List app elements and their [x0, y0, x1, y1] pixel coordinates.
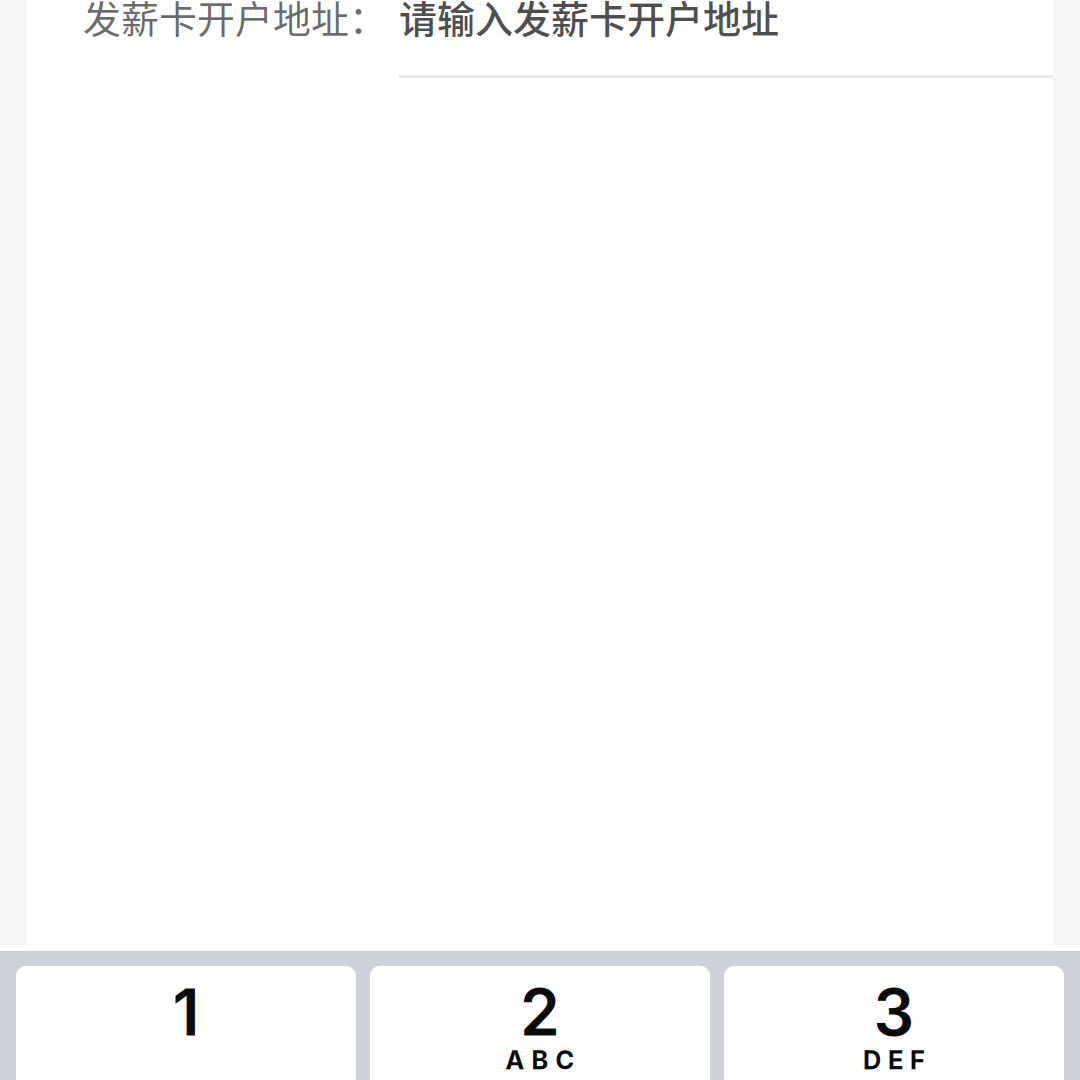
staticText: 发薪卡开户地址： — [83, 0, 387, 44]
staticText: 3 — [873, 974, 914, 1051]
staticText: DEF — [863, 1045, 925, 1075]
button[interactable]: 3 DEF — [724, 966, 1064, 1080]
staticText: 1 — [172, 974, 199, 1051]
button[interactable]: 2 ABC — [370, 966, 710, 1080]
button[interactable]: 1 — [16, 966, 356, 1080]
button[interactable]: 请输入发薪卡开户地址 — [399, 0, 1053, 78]
staticText: ABC — [505, 1045, 574, 1075]
staticText: 请输入发薪卡开户地址 — [399, 0, 779, 44]
staticText: 2 — [520, 974, 560, 1051]
